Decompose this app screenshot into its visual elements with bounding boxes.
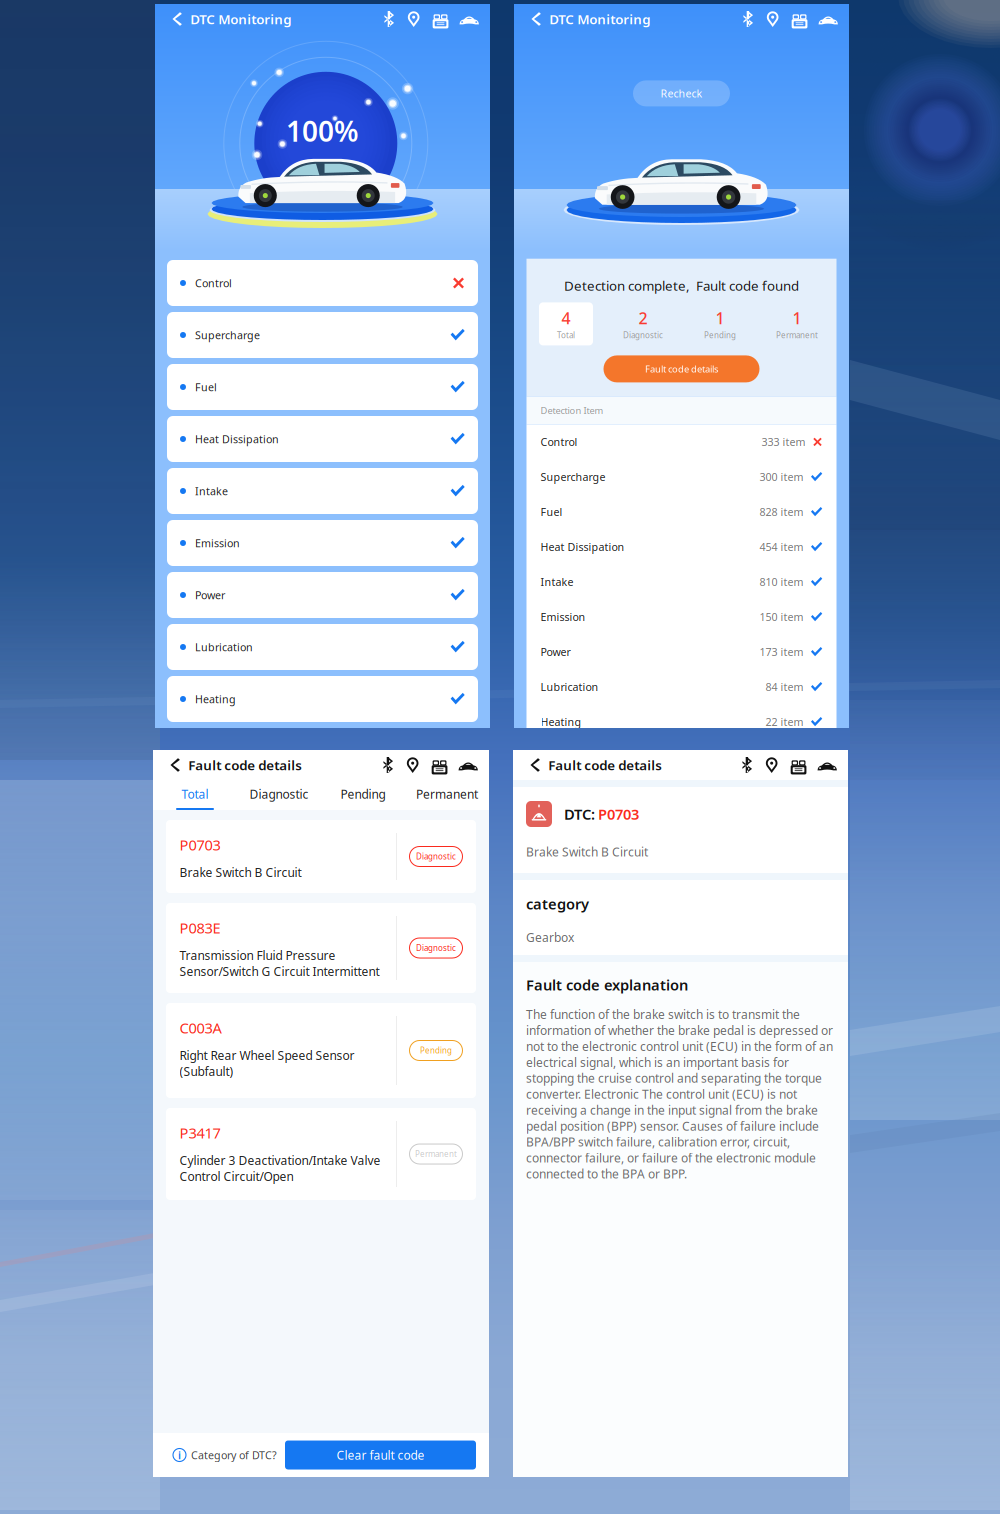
- staticText: C003A: [179, 1018, 221, 1037]
- button[interactable]: Intake: [526, 564, 836, 599]
- button[interactable]: Back: [164, 756, 188, 774]
- button[interactable]: Pending: [321, 780, 405, 810]
- button[interactable]: Heating: [526, 704, 836, 739]
- staticText: Heating: [195, 692, 236, 706]
- button[interactable]: 1: [681, 302, 758, 345]
- button[interactable]: Location: [406, 11, 422, 27]
- staticText: Heating: [540, 715, 581, 729]
- button[interactable]: OBD device: [433, 12, 448, 26]
- staticText: Category of DTC?: [191, 1448, 277, 1462]
- button[interactable]: Total: [153, 780, 237, 810]
- button[interactable]: Bluetooth: [384, 11, 395, 27]
- button[interactable]: Vehicle: [818, 13, 838, 24]
- button[interactable]: Heat Dissipation: [167, 416, 478, 462]
- staticText: 828 item: [759, 505, 803, 519]
- button[interactable]: Bluetooth: [743, 11, 754, 27]
- staticText: Right Rear Wheel Speed Sensor (Subfault): [179, 1047, 354, 1079]
- button[interactable]: Bluetooth: [742, 757, 753, 773]
- staticText: Permanent: [415, 1149, 457, 1159]
- staticText: Pending: [420, 1045, 452, 1056]
- button[interactable]: C003A: [166, 1003, 476, 1098]
- staticText: Fault code details: [548, 756, 662, 774]
- button[interactable]: Bluetooth: [383, 757, 394, 773]
- button[interactable]: Location: [764, 757, 780, 773]
- button[interactable]: Fuel: [526, 494, 836, 529]
- staticText: 2: [638, 307, 647, 329]
- button[interactable]: Diagnostic: [237, 780, 321, 810]
- button[interactable]: Heat Dissipation: [526, 529, 836, 564]
- button[interactable]: Permanent: [405, 780, 489, 810]
- staticText: 333 item: [761, 435, 805, 449]
- staticText: P3417: [179, 1123, 220, 1142]
- button[interactable]: Emission: [167, 520, 478, 566]
- staticText: Fault code details: [188, 756, 302, 774]
- button[interactable]: Recheck: [633, 80, 730, 106]
- button[interactable]: Fault code details: [603, 355, 759, 382]
- staticText: 84 item: [765, 680, 803, 694]
- staticText: Total: [557, 330, 575, 340]
- button[interactable]: Back: [524, 756, 548, 774]
- staticText: Recheck: [660, 86, 702, 100]
- button[interactable]: Control: [526, 424, 836, 459]
- button[interactable]: Heating: [167, 676, 478, 722]
- button[interactable]: P083E: [166, 903, 476, 993]
- staticText: Permanent: [416, 786, 478, 802]
- staticText: Emission: [195, 536, 240, 550]
- button[interactable]: 2: [604, 302, 681, 345]
- staticText: Diagnostic: [249, 786, 308, 802]
- staticText: Diagnostic: [623, 330, 663, 340]
- button[interactable]: Lubrication: [167, 624, 478, 670]
- button[interactable]: P3417: [166, 1108, 476, 1200]
- button[interactable]: 1: [758, 302, 835, 345]
- button[interactable]: Emission: [526, 599, 836, 634]
- staticText: DTC:: [564, 804, 595, 824]
- staticText: P0703: [179, 835, 220, 854]
- button[interactable]: OBD device: [792, 12, 807, 26]
- staticText: Control: [195, 276, 232, 290]
- button[interactable]: Vehicle: [458, 759, 478, 770]
- staticText: 100%: [286, 112, 359, 150]
- button[interactable]: OBD device: [791, 758, 806, 772]
- staticText: P0703: [598, 804, 639, 824]
- staticText: Heat Dissipation: [540, 540, 624, 554]
- button[interactable]: Clear fault code: [285, 1440, 476, 1469]
- button[interactable]: Power: [167, 572, 478, 618]
- button[interactable]: Supercharge: [167, 312, 478, 358]
- staticText: Lubrication: [540, 680, 598, 694]
- staticText: Cylinder 3 Deactivation/Intake Valve Con…: [179, 1152, 380, 1184]
- button[interactable]: Back: [166, 10, 190, 28]
- staticText: Power: [540, 645, 570, 659]
- staticText: Control: [540, 435, 577, 449]
- button[interactable]: Back: [525, 10, 549, 28]
- staticText: 22 item: [765, 715, 803, 729]
- staticText: Detection Item: [540, 404, 603, 417]
- staticText: Gearbox: [526, 929, 574, 945]
- staticText: Clear fault code: [336, 1447, 424, 1463]
- staticText: 1: [792, 307, 801, 329]
- button[interactable]: OBD device: [432, 758, 447, 772]
- button[interactable]: P0703: [166, 820, 476, 893]
- staticText: Intake: [195, 484, 228, 498]
- staticText: Fault code explanation: [526, 975, 688, 994]
- staticText: Transmission Fluid Pressure Sensor/Switc…: [179, 947, 379, 979]
- staticText: DTC Monitoring: [190, 10, 291, 28]
- staticText: Brake Switch B Circuit: [179, 864, 301, 880]
- staticText: Supercharge: [540, 470, 605, 484]
- staticText: DTC Monitoring: [549, 10, 650, 28]
- button[interactable]: Control: [167, 260, 478, 306]
- staticText: 4: [561, 307, 570, 329]
- button[interactable]: Intake: [167, 468, 478, 514]
- button[interactable]: Power: [526, 634, 836, 669]
- button[interactable]: Fuel: [167, 364, 478, 410]
- button[interactable]: 4: [527, 302, 604, 345]
- button[interactable]: i: [153, 1448, 285, 1462]
- button[interactable]: Supercharge: [526, 459, 836, 494]
- button[interactable]: Lubrication: [526, 669, 836, 704]
- button[interactable]: Location: [765, 11, 781, 27]
- staticText: Pending: [704, 330, 736, 340]
- button[interactable]: Vehicle: [459, 13, 479, 24]
- staticText: Power: [195, 588, 225, 602]
- staticText: Diagnostic: [416, 943, 456, 953]
- button[interactable]: Vehicle: [817, 759, 837, 770]
- button[interactable]: Location: [405, 757, 421, 773]
